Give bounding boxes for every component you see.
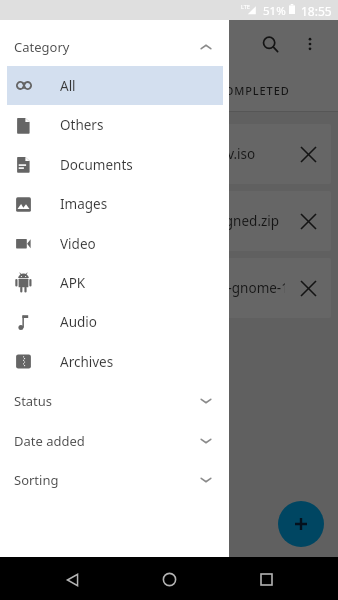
- staticText: Others: [60, 116, 104, 134]
- button[interactable]: Archives: [7, 342, 223, 381]
- staticText: Date added: [14, 432, 85, 450]
- staticText: Images: [60, 195, 108, 213]
- button[interactable]: DOWNLOADING: [0, 68, 169, 112]
- button[interactable]: COMPLETED: [169, 68, 338, 112]
- staticText: debian-live-testing-10.9.0-amd64-gnome-1…: [19, 279, 285, 297]
- staticText: Documents: [60, 156, 133, 174]
- staticText: Sorting: [14, 471, 59, 489]
- staticText: COMPLETED: [217, 83, 290, 98]
- button[interactable]: Images: [7, 184, 223, 224]
- button[interactable]: More options: [290, 24, 330, 64]
- staticText: APK: [60, 274, 86, 292]
- staticText: Status: [14, 392, 53, 410]
- button[interactable]: Video: [7, 224, 223, 263]
- button[interactable]: Category: [0, 27, 229, 66]
- button[interactable]: Search: [250, 24, 290, 64]
- staticText: ubuntu-20.04.3-desktop-amd64-lv.iso: [19, 145, 285, 163]
- button[interactable]: Remove: [285, 191, 331, 251]
- staticText: Video: [60, 235, 96, 253]
- staticText: All: [60, 77, 76, 95]
- button[interactable]: bitcoin-cre-0.21.0-win64-setup-signed.zi…: [7, 191, 331, 251]
- button[interactable]: Documents: [7, 145, 223, 184]
- button[interactable]: Sorting: [0, 460, 229, 499]
- staticText: LTE: [241, 3, 250, 10]
- button[interactable]: APK: [7, 263, 223, 302]
- staticText: Audio: [60, 313, 97, 331]
- button[interactable]: All: [7, 66, 223, 105]
- button[interactable]: Remove: [285, 258, 331, 318]
- button[interactable]: Remove: [285, 124, 331, 184]
- staticText: 18:55: [301, 3, 332, 19]
- button[interactable]: Add download: [278, 501, 324, 547]
- button[interactable]: Others: [7, 105, 223, 145]
- staticText: Archives: [60, 353, 114, 371]
- button[interactable]: Audio: [7, 302, 223, 342]
- staticText: DOWNLOADING: [37, 83, 133, 98]
- button[interactable]: debian-live-testing-10.9.0-amd64-gnome-1…: [7, 258, 331, 318]
- staticText: 51%: [263, 3, 286, 19]
- button[interactable]: Home: [145, 557, 193, 600]
- button[interactable]: Back: [48, 557, 96, 600]
- staticText: bitcoin-cre-0.21.0-win64-setup-signed.zi…: [19, 212, 285, 230]
- button[interactable]: ubuntu-20.04.3-desktop-amd64-lv.iso: [7, 124, 331, 184]
- button[interactable]: Recent apps: [242, 557, 290, 600]
- staticText: Category: [14, 38, 70, 56]
- button[interactable]: Status: [0, 381, 229, 421]
- button[interactable]: Date added: [0, 421, 229, 460]
